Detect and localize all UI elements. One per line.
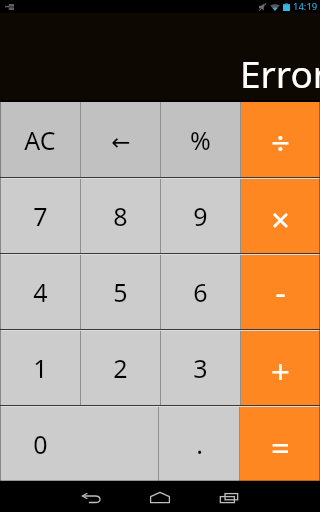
staticText: 2 <box>113 351 128 385</box>
staticText: AC <box>24 123 56 157</box>
button[interactable]: 0 <box>0 407 158 481</box>
staticText: % <box>190 123 211 157</box>
staticText: 0 <box>33 427 48 461</box>
button[interactable]: + <box>241 331 320 405</box>
staticText: - <box>275 270 286 315</box>
button[interactable]: AC <box>0 102 80 177</box>
staticText: 9 <box>193 199 208 233</box>
staticText: 14:19 <box>293 0 318 13</box>
staticText: ÷ <box>271 120 290 165</box>
button[interactable]: 8 <box>81 179 160 253</box>
staticText: 8 <box>113 199 128 233</box>
button[interactable]: Back <box>63 482 119 512</box>
staticText: 1 <box>33 351 48 385</box>
button[interactable]: ÷ <box>241 102 320 177</box>
staticText: 3 <box>193 351 208 385</box>
staticText: 6 <box>193 275 208 309</box>
button[interactable]: Delete <box>81 102 160 177</box>
staticText: × <box>271 197 290 242</box>
button[interactable]: % <box>161 102 240 177</box>
button[interactable]: Home <box>132 482 188 512</box>
button[interactable]: 1 <box>0 331 80 405</box>
other: Delete <box>111 129 131 156</box>
button[interactable]: × <box>241 179 320 253</box>
staticText: 4 <box>33 275 48 309</box>
button[interactable]: . <box>159 407 239 481</box>
button[interactable]: 7 <box>0 179 80 253</box>
button[interactable]: 9 <box>161 179 240 253</box>
staticText: ← <box>111 129 131 156</box>
button[interactable]: 6 <box>161 255 240 329</box>
staticText: = <box>271 425 290 470</box>
button[interactable]: - <box>241 255 320 329</box>
button[interactable]: 3 <box>161 331 240 405</box>
staticText: . <box>196 427 203 461</box>
staticText: Error <box>240 48 320 98</box>
staticText: 5 <box>113 275 128 309</box>
staticText: + <box>271 349 290 394</box>
button[interactable]: 5 <box>81 255 160 329</box>
staticText: 7 <box>33 199 48 233</box>
button[interactable]: 4 <box>0 255 80 329</box>
button[interactable]: Recent apps <box>201 482 257 512</box>
button[interactable]: 2 <box>81 331 160 405</box>
button[interactable]: = <box>240 407 320 481</box>
